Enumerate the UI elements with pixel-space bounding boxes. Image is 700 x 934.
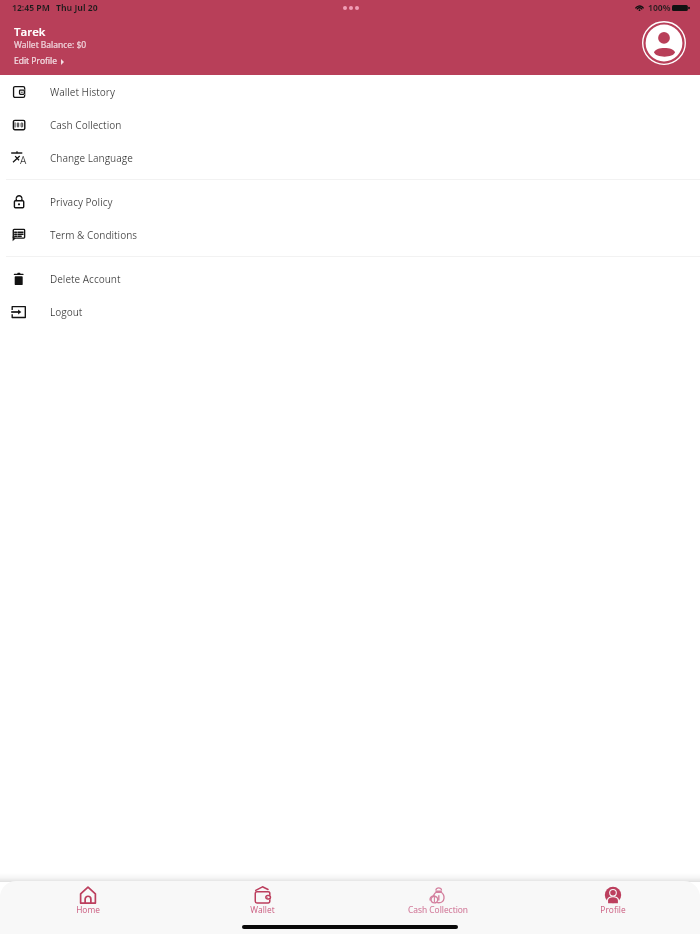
staticText: Change Language — [50, 151, 133, 165]
button[interactable]: Delete Account — [0, 262, 700, 295]
button[interactable]: Profile — [525, 881, 700, 934]
button[interactable]: Home — [0, 881, 175, 934]
staticText: Tarek — [14, 24, 46, 40]
button[interactable]: Edit Profile — [13, 53, 66, 66]
button[interactable]: A — [0, 141, 700, 174]
staticText: Cash Collection — [50, 118, 122, 132]
staticText: 100% — [648, 2, 671, 14]
button[interactable]: Term & Conditions — [0, 218, 700, 251]
button[interactable]: Wallet — [175, 881, 350, 934]
staticText: Privacy Policy — [50, 195, 113, 209]
staticText: Home — [76, 904, 100, 915]
staticText: Edit Profile — [14, 55, 57, 67]
button[interactable]: Profile picture — [642, 21, 686, 65]
staticText: Wallet Balance: $0 — [14, 39, 87, 51]
staticText: Wallet — [250, 904, 275, 915]
staticText: Cash Collection — [408, 904, 468, 915]
staticText: Term & Conditions — [50, 228, 138, 242]
staticText: Profile — [600, 904, 626, 915]
staticText: Delete Account — [50, 272, 121, 286]
button[interactable]: Logout — [0, 295, 700, 328]
button[interactable]: Cash Collection — [350, 881, 525, 934]
staticText: 12:45 PM — [12, 2, 50, 14]
staticText: Thu Jul 20 — [56, 2, 98, 14]
button[interactable]: Cash Collection — [0, 108, 700, 141]
staticText: Wallet History — [50, 85, 115, 99]
staticText: Logout — [50, 305, 83, 319]
button[interactable]: Privacy Policy — [0, 185, 700, 218]
staticText: A — [20, 153, 27, 167]
button[interactable]: Wallet History — [0, 75, 700, 108]
